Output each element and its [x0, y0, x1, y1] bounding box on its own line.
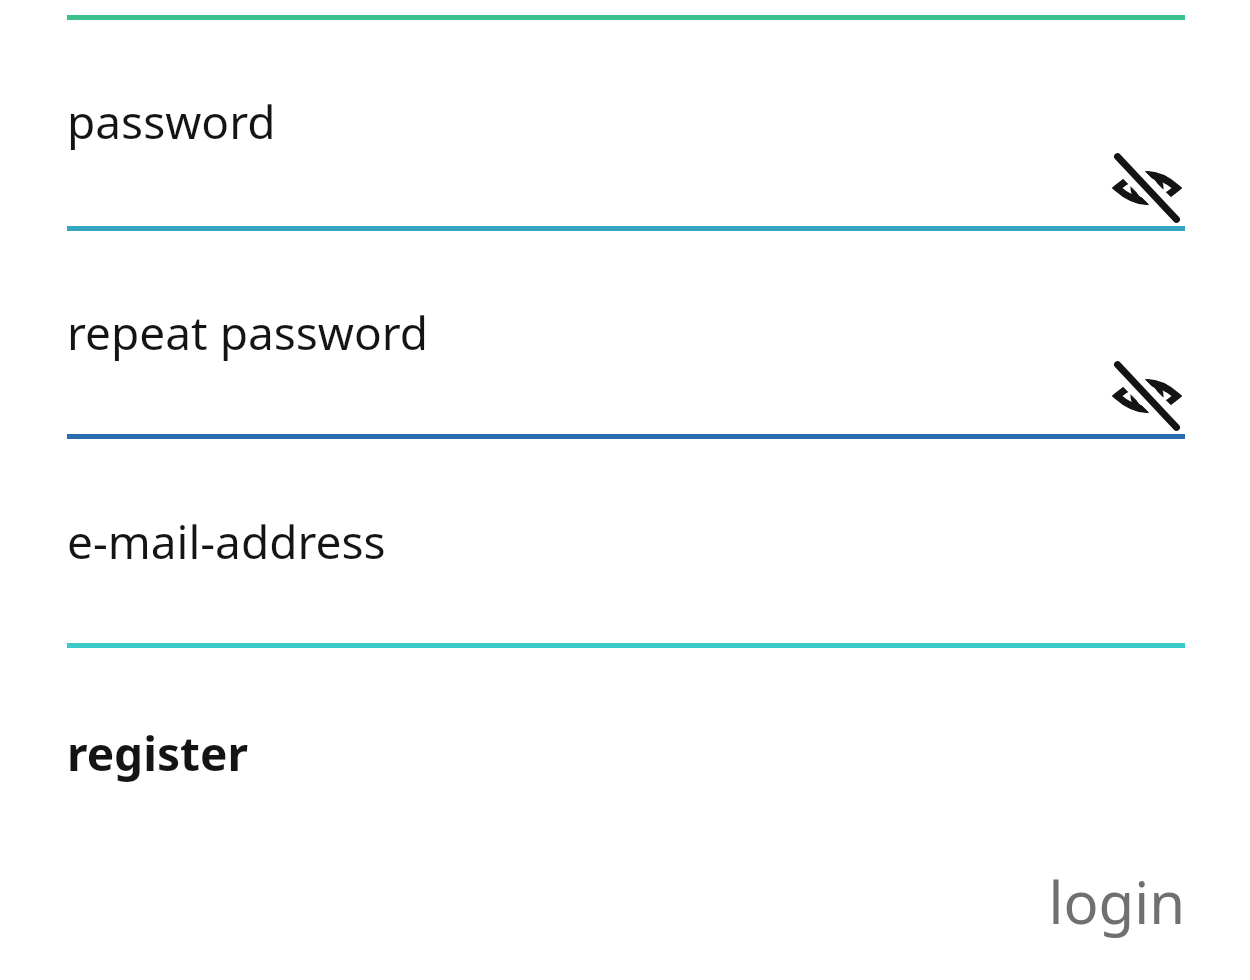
- staticText: login: [0, 862, 1185, 941]
- button[interactable]: password: [0, 88, 1250, 155]
- button[interactable]: register: [0, 718, 1250, 789]
- staticText: register: [67, 722, 249, 785]
- button[interactable]: Show password: [1109, 150, 1185, 226]
- button[interactable]: Show repeat password: [1109, 358, 1185, 434]
- staticText: password: [67, 90, 276, 153]
- staticText: repeat password: [67, 301, 429, 364]
- button[interactable]: repeat password: [0, 299, 1250, 366]
- button[interactable]: login: [0, 858, 1250, 945]
- button[interactable]: e-mail-address: [0, 508, 1250, 575]
- staticText: e-mail-address: [67, 510, 386, 573]
